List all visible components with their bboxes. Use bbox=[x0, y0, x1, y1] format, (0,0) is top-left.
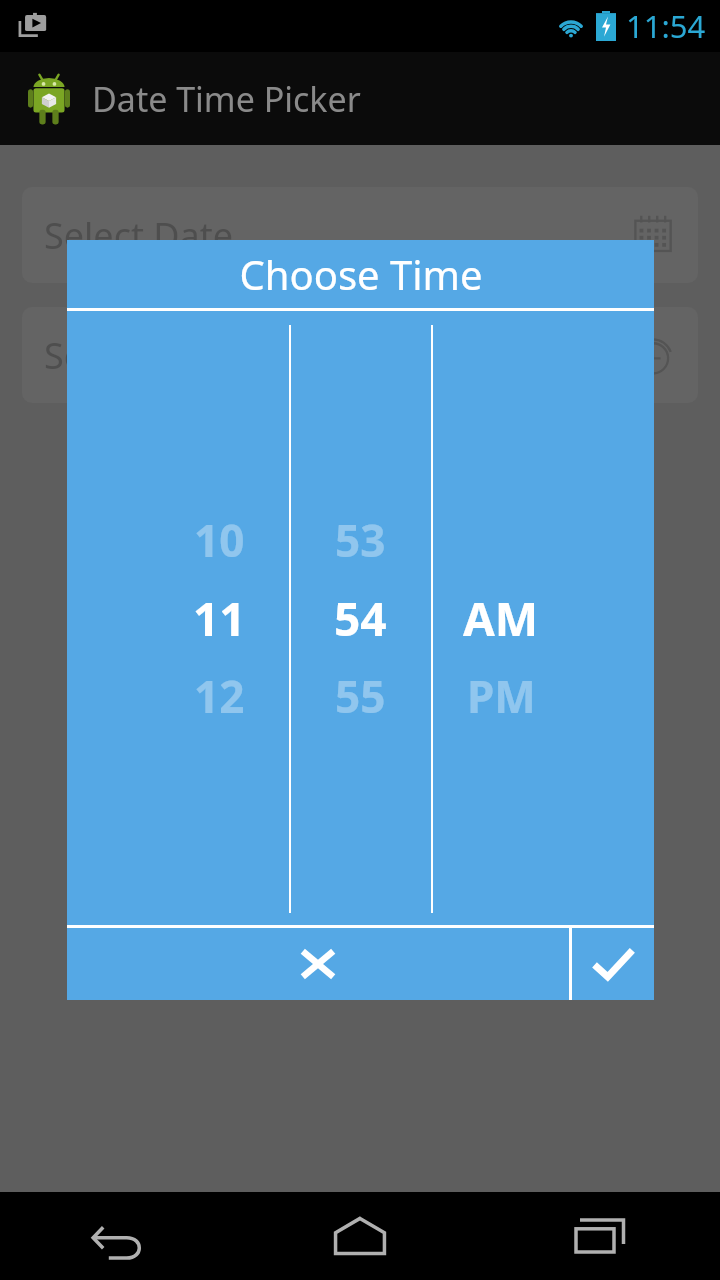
button[interactable]: 11 bbox=[159, 578, 279, 658]
staticText: AM bbox=[463, 587, 539, 650]
button[interactable]: 54 bbox=[300, 578, 420, 658]
button[interactable]: Recent apps bbox=[480, 1192, 720, 1280]
button[interactable]: Cancel bbox=[67, 928, 569, 1000]
button[interactable]: Home bbox=[240, 1192, 480, 1280]
staticText: Select Date bbox=[44, 211, 234, 260]
staticText: Select Time bbox=[44, 331, 237, 380]
staticText: 12 bbox=[194, 666, 245, 726]
staticText: 54 bbox=[334, 587, 387, 650]
button[interactable]: AM bbox=[441, 578, 561, 658]
staticText: 11:54 bbox=[626, 5, 706, 47]
staticText: 53 bbox=[335, 510, 386, 570]
staticText: 11 bbox=[193, 587, 246, 650]
staticText: PM bbox=[467, 666, 536, 726]
staticText: 55 bbox=[335, 666, 386, 726]
button[interactable]: Confirm bbox=[572, 928, 654, 1000]
button[interactable]: Back bbox=[0, 1192, 240, 1280]
button[interactable]: Select Time bbox=[22, 307, 698, 403]
staticText: 10 bbox=[194, 510, 245, 570]
staticText: Choose Time bbox=[239, 247, 483, 301]
button[interactable]: Select Date bbox=[22, 187, 698, 283]
staticText: Date Time Picker bbox=[92, 76, 361, 122]
